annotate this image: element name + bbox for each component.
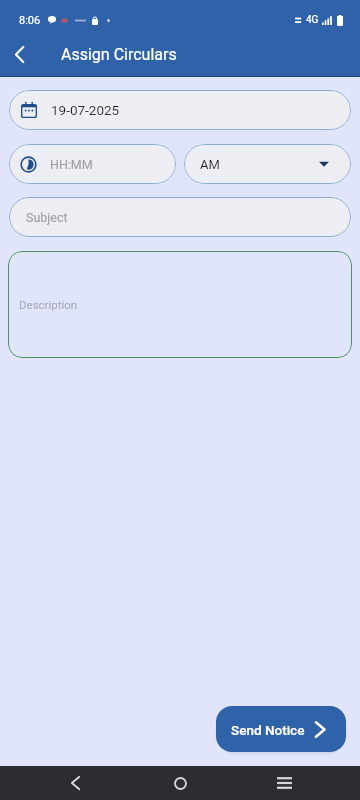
staticText: Subject — [26, 210, 68, 225]
staticText: Assign Circulars — [61, 45, 177, 64]
staticText: AM — [200, 157, 220, 172]
staticText: Send Notice — [231, 722, 305, 738]
button[interactable]: 19-07-2025 — [9, 90, 351, 130]
button[interactable]: Back — [1, 36, 37, 72]
button[interactable]: AM — [184, 144, 351, 184]
staticText: Description — [19, 298, 78, 311]
button[interactable]: Home — [152, 766, 208, 800]
staticText: 19-07-2025 — [51, 102, 120, 118]
staticText: 4G — [306, 14, 319, 26]
button[interactable]: Description — [8, 251, 352, 358]
staticText: HH:MM — [50, 157, 93, 172]
button[interactable]: HH:MM — [9, 144, 176, 184]
button[interactable]: Recents — [256, 766, 312, 800]
button[interactable]: Subject — [9, 197, 351, 237]
button[interactable]: Back — [47, 766, 103, 800]
button[interactable]: Send Notice — [216, 706, 346, 752]
staticText: 8:06 — [19, 14, 41, 27]
